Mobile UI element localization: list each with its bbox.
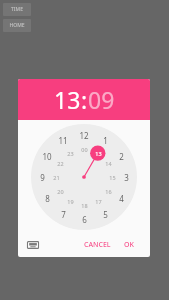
staticText: 13: [95, 150, 102, 157]
staticText: 6: [82, 214, 87, 225]
staticText: CANCEL: [84, 240, 111, 250]
button[interactable]: OK: [120, 237, 138, 253]
staticText: 12: [79, 130, 89, 141]
staticText: HOME: [9, 22, 25, 29]
button[interactable]: HOME: [3, 19, 31, 32]
staticText: :: [81, 84, 88, 115]
staticText: 8: [45, 193, 50, 204]
staticText: OK: [124, 240, 134, 250]
staticText: 14: [105, 160, 112, 167]
staticText: 15: [109, 174, 116, 181]
staticText: 4: [119, 193, 124, 204]
staticText: 16: [105, 188, 112, 195]
staticText: 20: [57, 188, 64, 195]
staticText: 19: [67, 198, 74, 205]
staticText: 00: [81, 146, 88, 153]
staticText: 1: [103, 135, 108, 146]
staticText: 23: [67, 150, 74, 157]
staticText: 5: [103, 209, 108, 220]
staticText: 18: [81, 202, 88, 209]
staticText: 11: [58, 135, 68, 146]
staticText: TIME: [11, 6, 23, 13]
staticText: 7: [61, 209, 66, 220]
staticText: 2: [119, 151, 124, 162]
staticText: 22: [57, 160, 64, 167]
staticText: 10: [42, 151, 52, 162]
staticText: 17: [95, 198, 102, 205]
button[interactable]: Switch to text input: [24, 236, 42, 254]
staticText: 3: [124, 172, 129, 183]
staticText: 21: [53, 174, 60, 181]
staticText: 9: [40, 172, 45, 183]
button[interactable]: 13: [54, 84, 81, 115]
button[interactable]: 09: [88, 84, 115, 115]
button[interactable]: CANCEL: [80, 237, 115, 253]
button[interactable]: TIME: [3, 3, 31, 16]
